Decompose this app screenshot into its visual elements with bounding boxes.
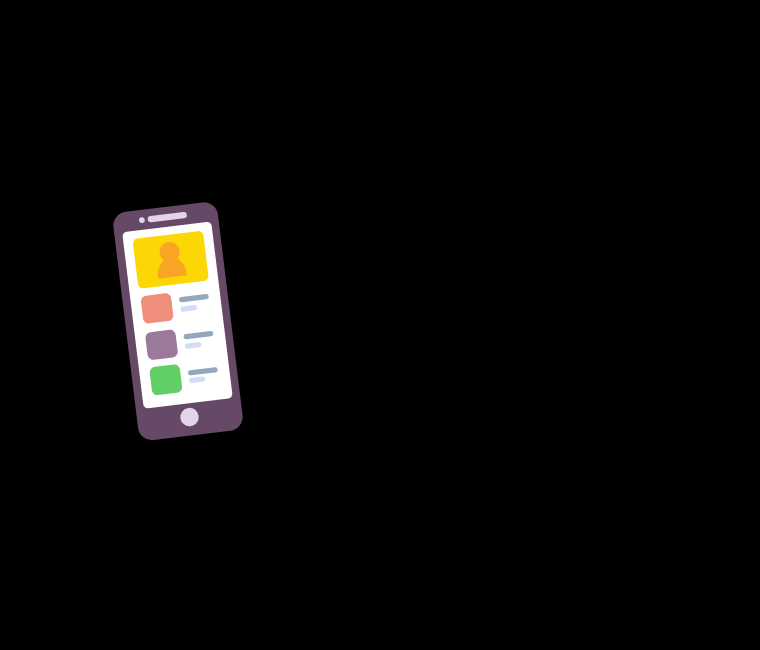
button[interactable]: Smartphone illustration <box>0 0 760 650</box>
